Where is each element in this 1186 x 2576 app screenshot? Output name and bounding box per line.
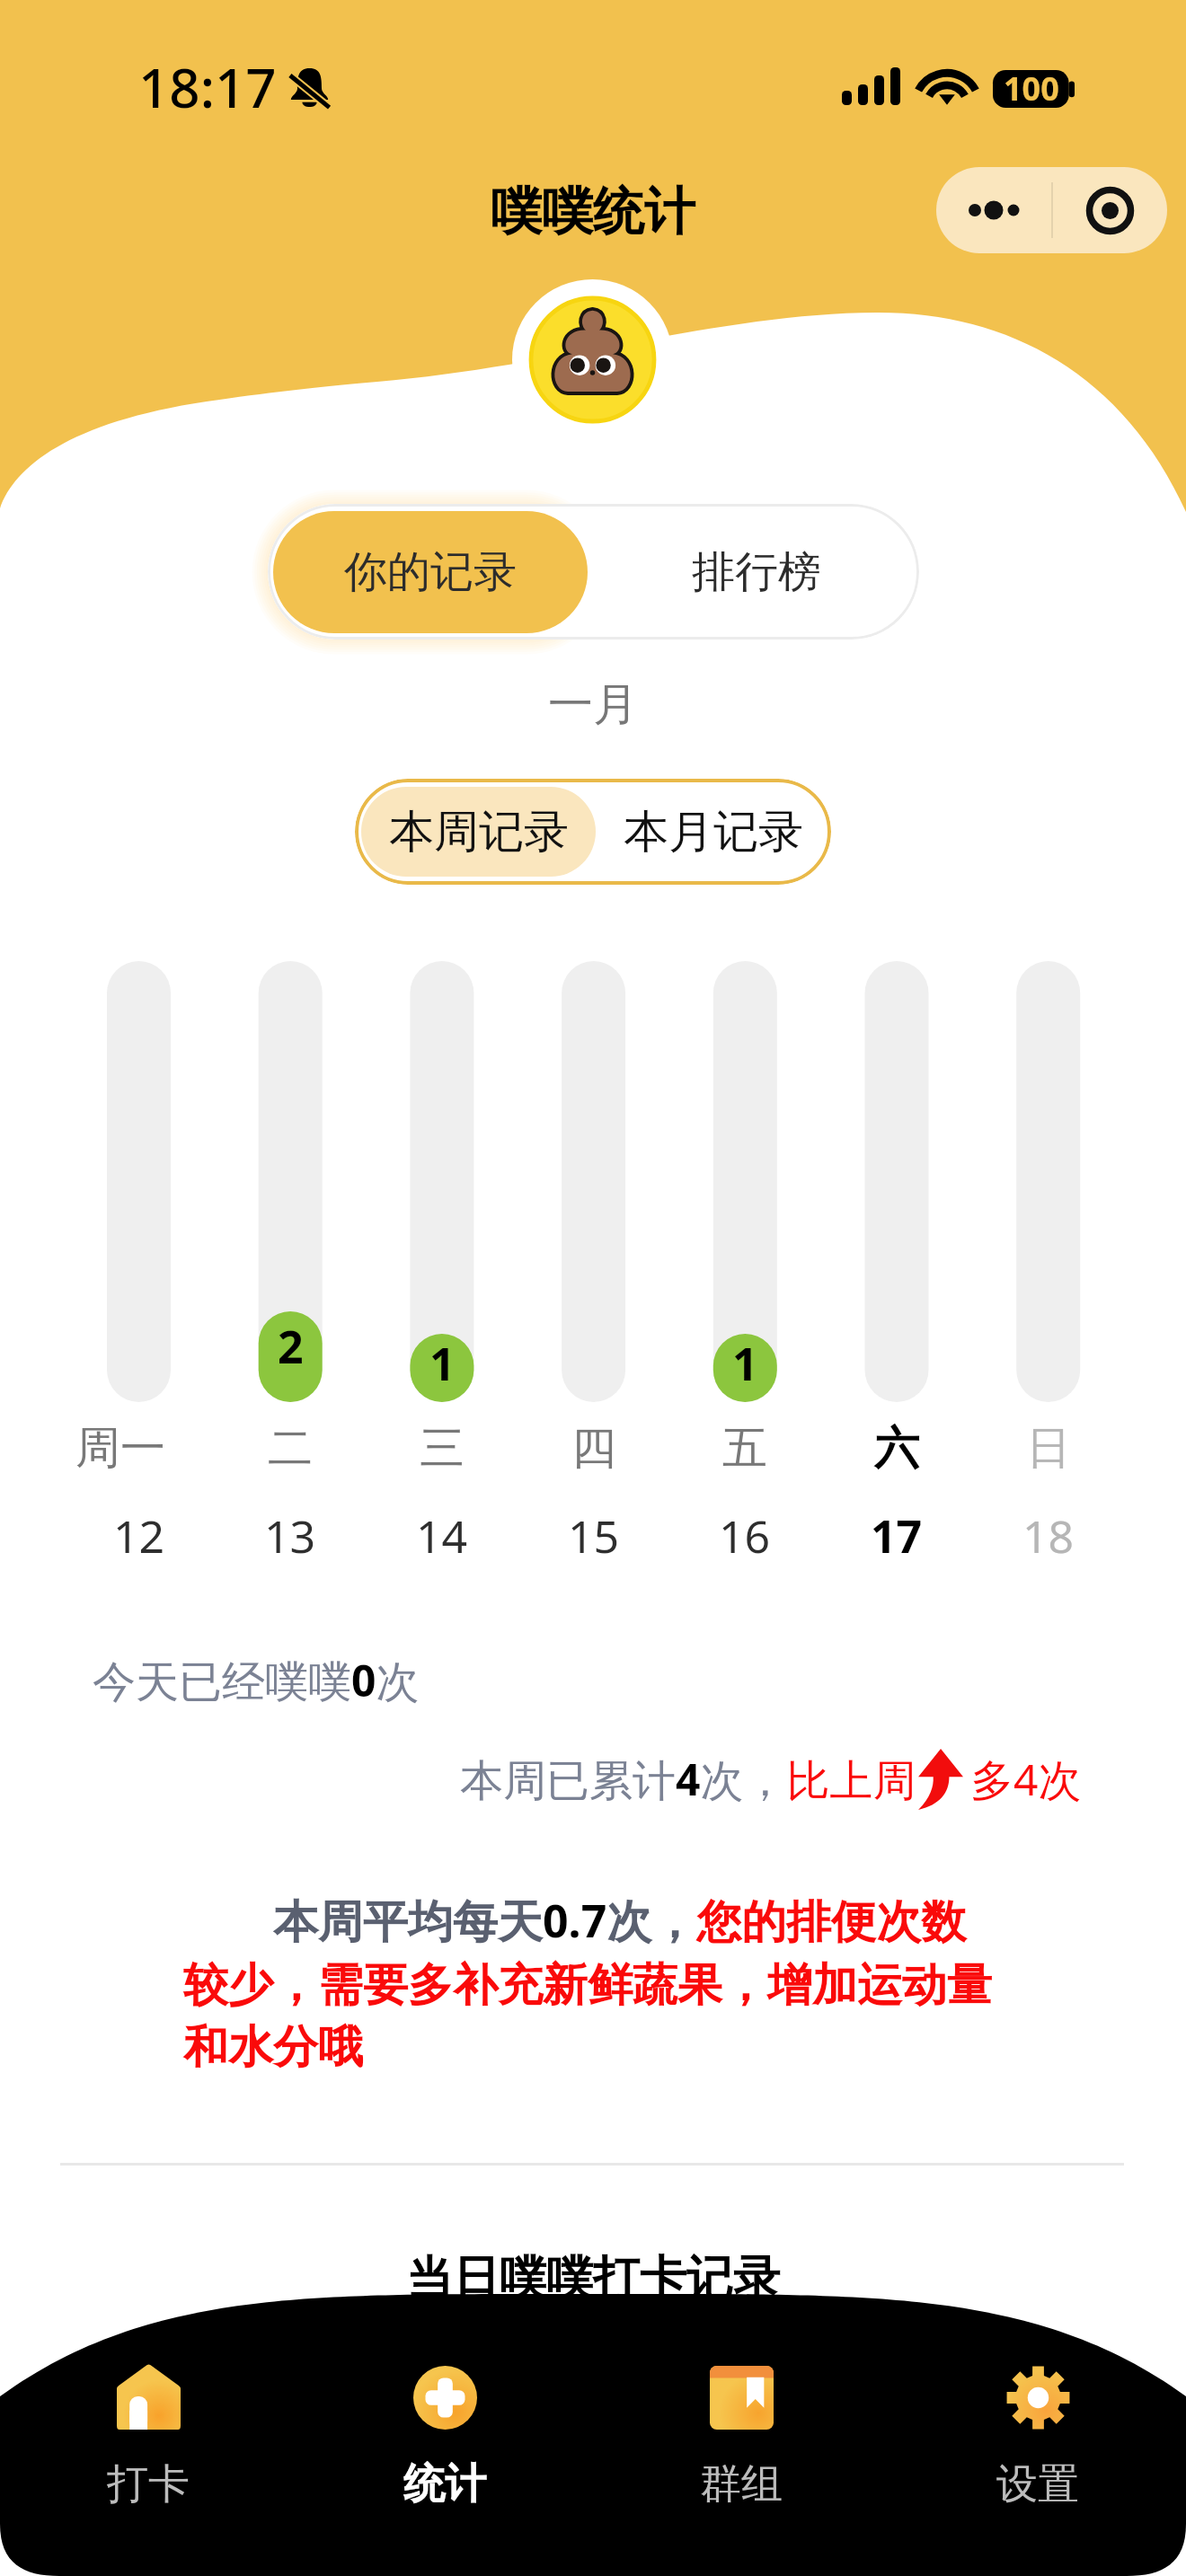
staticText: 当日噗噗打卡记录 [406, 2249, 780, 2308]
staticText: 排行榜 [692, 545, 821, 599]
button[interactable]: 群组 [593, 2366, 889, 2510]
staticText: 噗噗统计 [491, 180, 695, 244]
staticText: 15 [568, 1505, 620, 1566]
staticText: 2 [278, 1316, 304, 1370]
staticText: 13 [264, 1505, 316, 1566]
staticText: 100 [1004, 66, 1059, 110]
staticText: 本周已累计4次，比上周 [460, 1750, 916, 1809]
staticText: 本月记录 [624, 804, 803, 860]
staticText: 今天已经噗噗0次 [93, 1651, 420, 1710]
staticText: 设置 [996, 2458, 1079, 2510]
staticText: 五 [722, 1420, 767, 1477]
staticText: 18:17 [138, 50, 277, 124]
staticText: 16 [719, 1505, 771, 1566]
staticText: 四 [571, 1420, 616, 1477]
button[interactable]: 统计 [296, 2366, 593, 2510]
staticText: 六 [874, 1420, 919, 1477]
staticText: 14 [416, 1505, 468, 1566]
staticText: 统计 [403, 2458, 486, 2510]
staticText: 群组 [700, 2458, 783, 2510]
staticText: 三 [420, 1420, 465, 1477]
button[interactable]: 本周记录 [361, 787, 596, 877]
button[interactable]: 排行榜 [593, 504, 919, 640]
button[interactable]: 打卡 [0, 2366, 296, 2510]
staticText: 17 [871, 1505, 923, 1566]
staticText: 一月 [548, 676, 638, 733]
staticText: 打卡 [107, 2458, 190, 2510]
staticText: 本周记录 [389, 804, 569, 860]
staticText: 12 [113, 1505, 165, 1566]
staticText: 1 [429, 1333, 456, 1387]
staticText: 周一 [75, 1420, 165, 1477]
staticText: 1 [732, 1333, 758, 1387]
button[interactable]: More options [936, 167, 1051, 253]
button[interactable]: 本月记录 [596, 779, 831, 885]
button[interactable]: 设置 [889, 2366, 1186, 2510]
staticText: 多4次 [970, 1750, 1082, 1809]
staticText: 18 [1022, 1505, 1075, 1566]
button[interactable]: 你的记录 [273, 511, 588, 633]
button[interactable]: Close mini program [1053, 167, 1167, 253]
staticText: 你的记录 [344, 545, 517, 599]
staticText: 二 [268, 1420, 313, 1477]
staticText: 日 [1026, 1420, 1071, 1477]
staticText: 本周平均每天0.7次，您的排便次数较少，需要多补充新鲜蔬果，增加运动量和水分哦 [183, 1890, 1003, 2075]
